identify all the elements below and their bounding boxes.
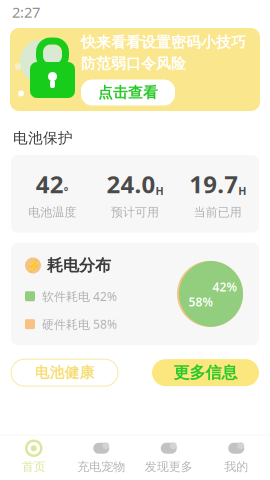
staticText: 更多信息 (173, 363, 237, 382)
staticText: 2:27 (12, 2, 40, 22)
button[interactable]: 快来看看设置密码小技巧 (10, 28, 260, 111)
staticText: 防范弱口令风险 (81, 54, 186, 72)
staticText: 电池健康 (34, 364, 94, 382)
button[interactable]: 我的 (202, 440, 270, 474)
staticText: 充电宠物 (77, 459, 125, 474)
button[interactable]: 更多信息 (152, 359, 259, 386)
staticText: H (155, 184, 163, 198)
staticText: 耗电分布 (47, 256, 111, 275)
staticText: ° (64, 184, 69, 198)
button[interactable]: 首页 (0, 440, 67, 474)
staticText: 电池保护 (13, 129, 73, 147)
staticText: 点击查看 (98, 83, 158, 101)
staticText: 预计可用 (111, 205, 159, 220)
staticText: 42% (212, 279, 237, 295)
staticText: 42 (36, 168, 64, 200)
staticText: 当前已用 (194, 205, 242, 220)
staticText: 硬件耗电 58% (42, 316, 117, 332)
staticText: 24.0 (106, 168, 155, 200)
button[interactable]: 电池健康 (11, 359, 118, 386)
staticText: 软件耗电 42% (42, 288, 117, 304)
staticText: 首页 (22, 459, 46, 474)
staticText: 58% (188, 294, 213, 310)
staticText: ⚡ (25, 259, 40, 272)
staticText: H (238, 184, 246, 198)
button[interactable]: 充电宠物 (67, 440, 135, 474)
staticText: 电池温度 (28, 205, 76, 220)
button[interactable]: 发现更多 (135, 440, 202, 474)
staticText: 发现更多 (145, 459, 193, 474)
staticText: 19.7 (189, 168, 238, 200)
staticText: 快来看看设置密码小技巧 (81, 33, 246, 51)
staticText: 我的 (224, 459, 248, 474)
